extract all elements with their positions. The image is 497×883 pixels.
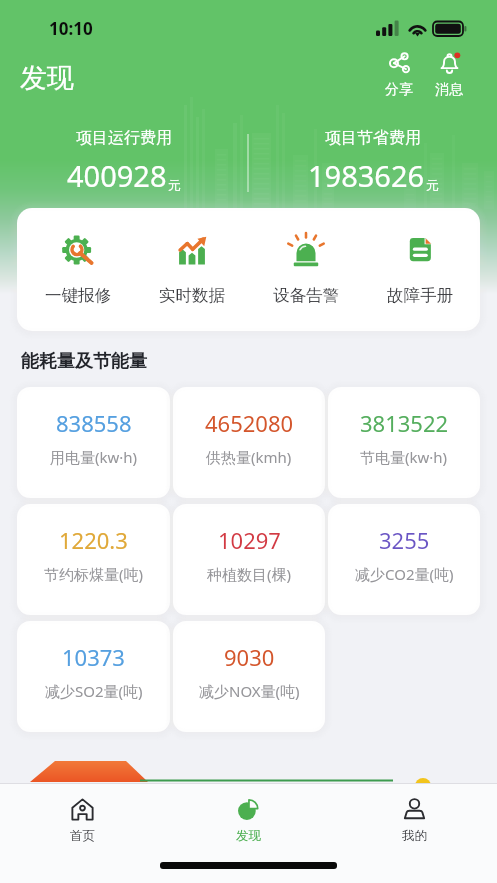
- staticText: 3255: [379, 525, 430, 555]
- staticText: 9030: [224, 642, 275, 672]
- staticText: 用电量(kw·h): [50, 447, 138, 467]
- staticText: 元: [426, 177, 439, 193]
- staticText: 元: [168, 177, 181, 193]
- button[interactable]: 4652080: [176, 390, 322, 495]
- button[interactable]: 10373: [20, 624, 167, 729]
- staticText: 设备告警: [273, 285, 339, 306]
- button[interactable]: 一键报修: [20, 211, 135, 328]
- staticText: 1220.3: [59, 525, 128, 555]
- staticText: 种植数目(棵): [207, 564, 292, 584]
- staticText: 首页: [70, 828, 95, 844]
- button[interactable]: 10297: [176, 507, 322, 612]
- staticText: 实时数据: [159, 285, 225, 306]
- button[interactable]: 3255: [331, 507, 477, 612]
- staticText: 1983626: [308, 156, 425, 195]
- button[interactable]: 故障手册: [363, 211, 477, 328]
- button[interactable]: 消息: [435, 51, 463, 99]
- staticText: 4652080: [205, 408, 294, 438]
- button[interactable]: 实时数据: [135, 211, 249, 328]
- button[interactable]: 我的: [331, 784, 497, 844]
- staticText: 减少SO2量(吨): [45, 681, 143, 701]
- staticText: 能耗量及节能量: [21, 350, 147, 373]
- staticText: 供热量(kmh): [206, 447, 292, 467]
- staticText: 10297: [218, 525, 281, 555]
- staticText: 发现: [236, 828, 261, 844]
- staticText: 10373: [62, 642, 125, 672]
- button[interactable]: 首页: [0, 784, 165, 844]
- staticText: 项目运行费用: [76, 128, 172, 148]
- staticText: 消息: [435, 81, 463, 99]
- button[interactable]: 发现: [165, 784, 331, 844]
- button[interactable]: 3813522: [331, 390, 477, 495]
- staticText: 我的: [402, 828, 427, 844]
- staticText: 10:10: [49, 17, 93, 40]
- button[interactable]: 分享: [385, 51, 413, 99]
- staticText: 838558: [56, 408, 132, 438]
- button[interactable]: 设备告警: [249, 211, 363, 328]
- staticText: 一键报修: [45, 285, 111, 306]
- button[interactable]: 9030: [176, 624, 322, 729]
- staticText: 项目节省费用: [325, 128, 421, 148]
- staticText: 故障手册: [387, 285, 453, 306]
- staticText: 400928: [67, 156, 167, 195]
- staticText: 减少NOX量(吨): [199, 681, 300, 701]
- staticText: 分享: [385, 81, 413, 99]
- staticText: 减少CO2量(吨): [355, 564, 454, 584]
- staticText: 节电量(kw·h): [360, 447, 448, 467]
- staticText: 3813522: [360, 408, 449, 438]
- staticText: 节约标煤量(吨): [44, 564, 144, 584]
- staticText: 发现: [20, 61, 74, 95]
- button[interactable]: 838558: [20, 390, 167, 495]
- button[interactable]: 1220.3: [20, 507, 167, 612]
